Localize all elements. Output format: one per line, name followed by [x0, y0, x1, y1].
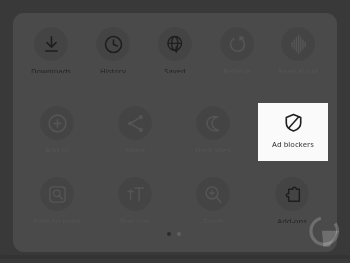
button[interactable]: Ad blockers [258, 103, 328, 161]
button[interactable]: Saved [144, 27, 206, 73]
button[interactable]: Zoom [182, 177, 244, 223]
button[interactable]: Add to [26, 106, 88, 152]
button[interactable]: History [82, 27, 144, 73]
button[interactable]: Find on page [26, 177, 88, 223]
button[interactable]: Dark sites [182, 106, 244, 152]
staticText: Add-ons [261, 216, 323, 223]
button[interactable]: Downloads [20, 27, 82, 73]
button[interactable]: Share [104, 106, 166, 152]
button[interactable]: Text size [104, 177, 166, 223]
staticText: Ad blockers [272, 139, 314, 149]
button[interactable]: Read aloud [267, 27, 329, 73]
button[interactable]: Add-ons [261, 177, 323, 223]
staticText: Downloads [20, 66, 82, 73]
button[interactable]: Refresh [206, 27, 268, 73]
staticText: History [82, 66, 144, 73]
staticText: Saved [144, 66, 206, 73]
